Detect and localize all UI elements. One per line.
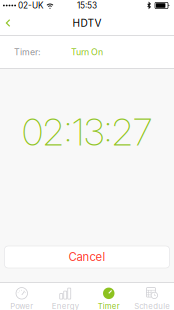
staticText: Cancel	[68, 250, 105, 264]
button[interactable]: Energy	[43, 283, 87, 310]
button[interactable]: Cancel	[4, 246, 169, 268]
button[interactable]: Power	[0, 283, 43, 310]
staticText: Schedule	[134, 302, 170, 310]
staticText: Timer	[98, 302, 120, 310]
staticText: 02:13:27	[22, 110, 152, 154]
button[interactable]: Schedule	[130, 283, 174, 310]
button[interactable]: Turn On	[69, 41, 105, 63]
staticText: HDTV	[72, 17, 101, 29]
staticText: Timer:	[14, 47, 41, 57]
button[interactable]: Timer	[87, 283, 130, 310]
staticText: 15:53	[77, 0, 97, 10]
staticText: Turn On	[71, 47, 103, 57]
button[interactable]: Back	[0, 14, 20, 32]
staticText: 02-UK	[18, 0, 44, 10]
staticText: Power	[10, 302, 33, 310]
staticText: Energy	[52, 302, 79, 310]
